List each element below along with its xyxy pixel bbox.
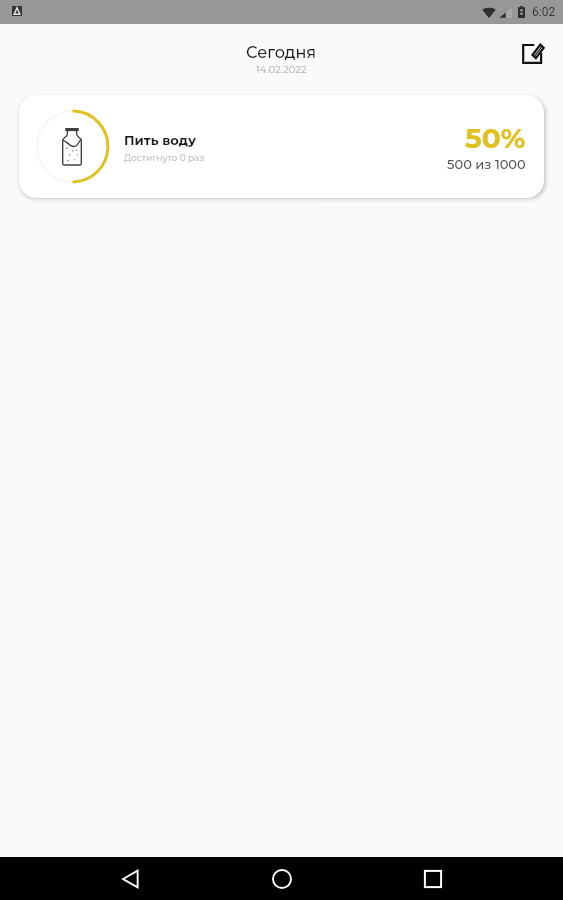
button[interactable]: Back bbox=[108, 857, 152, 900]
button[interactable]: Recents bbox=[411, 857, 455, 900]
button[interactable]: Edit bbox=[516, 37, 548, 69]
button[interactable]: Пить воду bbox=[19, 95, 544, 198]
staticText: Пить воду bbox=[124, 132, 196, 148]
staticText: 50% bbox=[465, 121, 526, 155]
staticText: Сегодня bbox=[246, 43, 317, 63]
button[interactable]: Home bbox=[260, 857, 304, 900]
staticText: 14.02.2022 bbox=[256, 63, 307, 75]
staticText: 500 из 1000 bbox=[447, 156, 526, 172]
staticText: Достигнуто 0 раз bbox=[124, 152, 205, 163]
staticText: 6:02 bbox=[532, 5, 556, 19]
